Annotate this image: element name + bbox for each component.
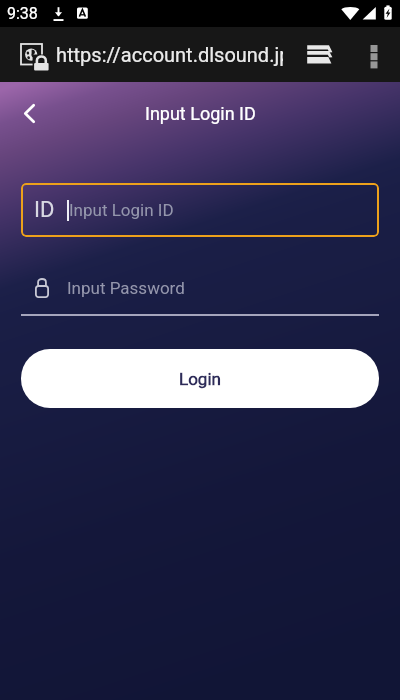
staticText: Login [179, 369, 221, 389]
button[interactable]: ID [21, 183, 379, 237]
staticText: Input Login ID [69, 200, 174, 220]
button[interactable]: Login [21, 349, 379, 408]
staticText: ID [34, 197, 55, 223]
button[interactable]: https://account.dlsound.jp [56, 43, 283, 66]
button[interactable]: More options [355, 41, 393, 83]
button[interactable]: Site information [16, 40, 50, 72]
staticText: Input Password [67, 278, 185, 298]
staticText: https://account.dlsound.jp [56, 43, 283, 66]
button[interactable]: Back [8, 92, 50, 134]
staticText: 9:38 [7, 4, 38, 23]
button[interactable]: Tabs [297, 41, 343, 83]
button[interactable]: Input Password [21, 262, 379, 316]
staticText: Input Login ID [145, 103, 256, 124]
